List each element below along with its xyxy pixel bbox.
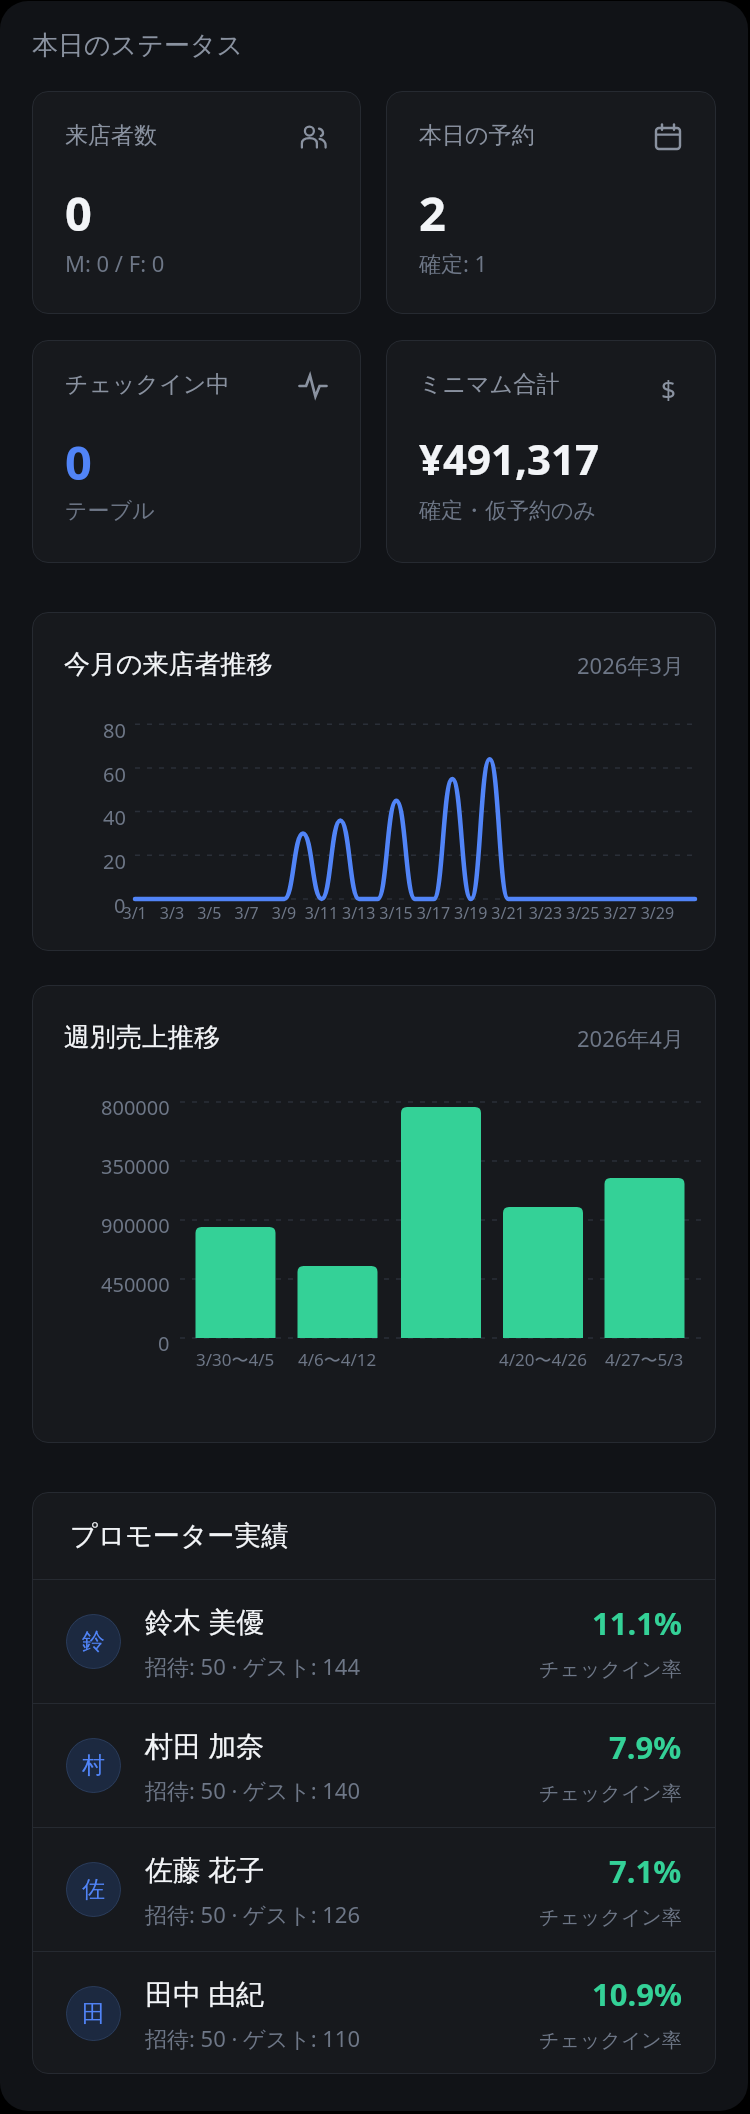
button[interactable]: 週別売上推移	[32, 985, 716, 1443]
staticText: 2	[419, 181, 446, 245]
staticText: 招待: 50 · ゲスト: 140	[145, 1775, 361, 1805]
staticText: 11.1%	[592, 1602, 682, 1644]
staticText: 招待: 50 · ゲスト: 110	[145, 2023, 361, 2053]
staticText: 来店者数	[65, 121, 157, 150]
staticText: チェックイン率	[539, 2028, 682, 2053]
button[interactable]: チェックイン中	[32, 340, 361, 563]
staticText: 田	[82, 1999, 105, 2028]
staticText: 0	[65, 430, 92, 494]
button[interactable]: 田	[32, 1952, 716, 2074]
staticText: 10.9%	[592, 1973, 682, 2015]
button[interactable]: 今月の来店者推移	[32, 612, 716, 951]
staticText: 本日のステータス	[32, 29, 244, 62]
staticText: 週別売上推移	[64, 1021, 220, 1054]
staticText: ミニマム合計	[419, 370, 560, 399]
staticText: 0	[65, 181, 92, 245]
staticText: チェックイン中	[65, 370, 230, 399]
staticText: チェックイン率	[539, 1657, 682, 1682]
staticText: ¥491,317	[419, 430, 600, 487]
other: People	[298, 122, 328, 152]
staticText: 村	[82, 1751, 105, 1780]
button[interactable]: ミニマム合計	[386, 340, 716, 563]
staticText: チェックイン率	[539, 1905, 682, 1930]
staticText: プロモーター実績	[70, 1519, 289, 1553]
staticText: M: 0 / F: 0	[65, 248, 165, 278]
staticText: 今月の来店者推移	[64, 648, 273, 681]
staticText: 7.9%	[609, 1726, 682, 1768]
staticText: 佐	[82, 1875, 105, 1904]
other: Activity	[298, 371, 328, 401]
staticText: 2026年4月	[577, 1023, 684, 1053]
staticText: 7.1%	[609, 1850, 682, 1892]
staticText: 佐藤 花子	[145, 1850, 265, 1888]
other: Calendar	[653, 122, 683, 152]
staticText: チェックイン率	[539, 1781, 682, 1806]
staticText: 招待: 50 · ゲスト: 126	[145, 1899, 361, 1929]
staticText: 鈴木 美優	[145, 1602, 265, 1640]
staticText: 鈴	[82, 1627, 105, 1656]
staticText: 2026年3月	[577, 650, 684, 680]
button[interactable]: 鈴	[32, 1580, 716, 1703]
staticText: 確定・仮予約のみ	[419, 497, 597, 525]
staticText: $	[661, 371, 676, 401]
staticText: 村田 加奈	[145, 1726, 265, 1764]
button[interactable]: 村	[32, 1704, 716, 1827]
staticText: 本日の予約	[419, 121, 535, 150]
staticText: テーブル	[65, 497, 155, 525]
staticText: 田中 由紀	[145, 1974, 265, 2012]
button[interactable]: 来店者数	[32, 91, 361, 314]
staticText: 確定: 1	[419, 248, 488, 278]
staticText: 招待: 50 · ゲスト: 144	[145, 1651, 361, 1681]
button[interactable]: 佐	[32, 1828, 716, 1951]
button[interactable]: 本日の予約	[386, 91, 716, 314]
